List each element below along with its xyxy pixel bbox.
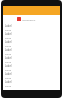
staticText: value: [5, 60, 11, 63]
staticText: value: [5, 76, 11, 79]
staticText: Application: [22, 18, 36, 21]
staticText: value: [5, 36, 11, 39]
staticText: Label: [5, 32, 12, 36]
staticText: Label: [5, 72, 12, 76]
staticText: Label: [5, 64, 12, 68]
staticText: value: [5, 52, 11, 55]
staticText: Label: [5, 80, 12, 84]
staticText: Label: [5, 56, 12, 60]
staticText: Label: [5, 24, 12, 28]
staticText: value: [5, 28, 11, 31]
staticText: Label: [5, 48, 12, 52]
staticText: Label: [5, 40, 12, 44]
staticText: value: [5, 84, 11, 87]
staticText: value: [5, 68, 11, 71]
staticText: value: [5, 44, 11, 47]
